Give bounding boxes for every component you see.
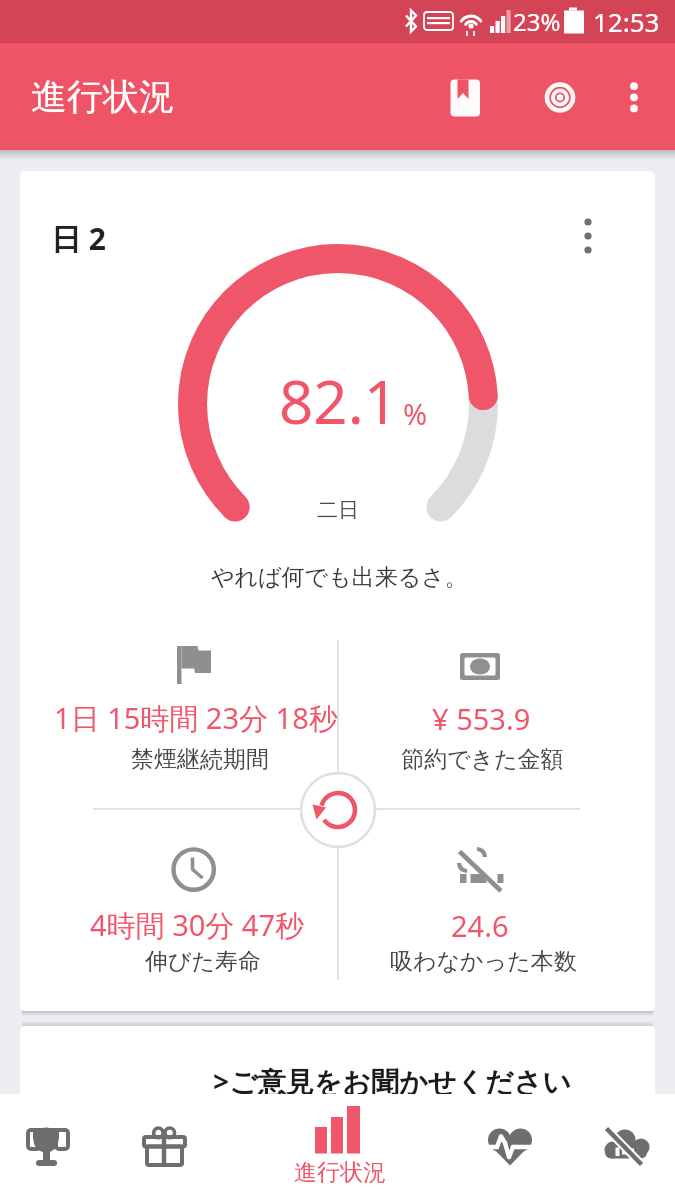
staticText: 二日 — [317, 497, 359, 523]
button[interactable] — [570, 1094, 675, 1200]
button[interactable] — [230, 1094, 450, 1200]
staticText: 23% — [513, 5, 561, 38]
staticText: 4時間 30分 47秒 — [90, 905, 305, 945]
staticText: 82.1 — [279, 360, 399, 440]
staticText: % — [403, 394, 428, 433]
button[interactable] — [450, 1094, 570, 1200]
staticText: 節約できた金額 — [401, 745, 564, 774]
button[interactable] — [441, 73, 489, 121]
button[interactable] — [0, 1094, 106, 1200]
staticText: 吸わなかった本数 — [390, 947, 577, 976]
staticText: ¥ 553.9 — [432, 699, 531, 738]
staticText: やれば何でも出来るさ。 — [211, 563, 468, 592]
staticText: >ご意見をお聞かせください — [213, 1062, 571, 1100]
staticText: 伸びた寿命 — [145, 947, 262, 976]
button[interactable] — [564, 214, 612, 262]
button[interactable] — [20, 1026, 655, 1200]
staticText: 24.6 — [451, 906, 509, 945]
staticText: 禁煙継続期間 — [131, 745, 269, 774]
button[interactable] — [106, 1094, 230, 1200]
button[interactable] — [301, 772, 376, 847]
staticText: 12:53 — [593, 4, 660, 39]
button[interactable] — [536, 73, 584, 121]
staticText: 日 2 — [51, 218, 106, 259]
button[interactable] — [610, 73, 658, 121]
staticText: 進行状況 — [294, 1158, 386, 1187]
staticText: 1日 15時間 23分 18秒 — [54, 698, 338, 738]
staticText: 進行状況 — [31, 74, 175, 119]
